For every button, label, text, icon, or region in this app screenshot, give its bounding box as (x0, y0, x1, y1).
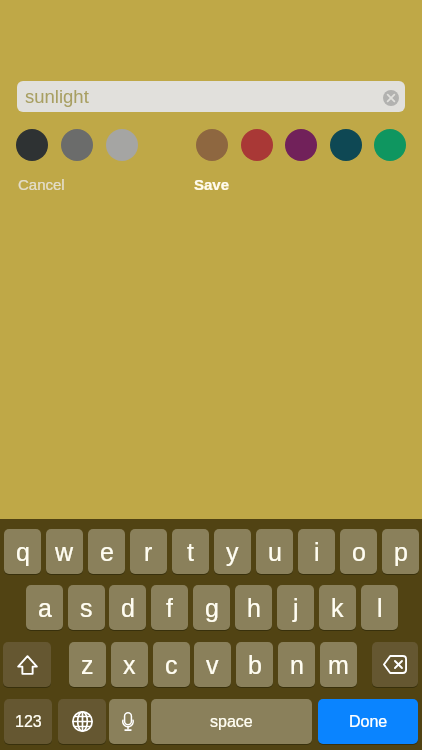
button[interactable]: y (214, 529, 251, 574)
button[interactable]: Colour swatch (285, 129, 317, 161)
staticText: v (206, 651, 219, 679)
button[interactable]: a (26, 585, 63, 630)
button[interactable]: n (278, 642, 315, 687)
staticText: Cancel (18, 176, 65, 193)
button[interactable]: Colour swatch (61, 129, 93, 161)
button[interactable]: r (130, 529, 167, 574)
staticText: x (123, 651, 136, 679)
staticText: h (247, 594, 261, 622)
staticText: t (187, 538, 194, 566)
button[interactable]: Save (194, 176, 230, 193)
button[interactable]: x (111, 642, 148, 687)
button[interactable]: Next keyboard (58, 699, 106, 744)
staticText: s (80, 594, 93, 622)
staticText: m (328, 651, 349, 679)
staticText: k (331, 594, 344, 622)
button[interactable]: Dictation (109, 699, 147, 744)
button[interactable]: Done (318, 699, 418, 744)
staticText: z (81, 651, 94, 679)
staticText: r (144, 538, 153, 566)
staticText: 123 (15, 713, 42, 731)
button[interactable]: b (236, 642, 273, 687)
button[interactable]: Colour swatch (374, 129, 406, 161)
staticText: w (55, 538, 74, 566)
button[interactable]: v (194, 642, 231, 687)
button[interactable]: space (151, 699, 312, 744)
staticText: g (205, 594, 219, 622)
button[interactable]: m (320, 642, 357, 687)
button[interactable]: d (109, 585, 146, 630)
staticText: sunlight (25, 86, 89, 107)
button[interactable]: Cancel (18, 176, 65, 193)
button[interactable]: g (193, 585, 230, 630)
button[interactable]: Colour swatch (196, 129, 228, 161)
staticText: c (165, 651, 178, 679)
staticText: i (314, 538, 320, 566)
button[interactable]: Colour swatch (330, 129, 362, 161)
button[interactable]: i (298, 529, 335, 574)
button[interactable]: s (68, 585, 105, 630)
staticText: q (16, 538, 30, 566)
button[interactable]: o (340, 529, 377, 574)
staticText: y (226, 538, 239, 566)
button[interactable]: u (256, 529, 293, 574)
button[interactable]: Shift (3, 642, 51, 687)
staticText: f (166, 594, 173, 622)
button[interactable]: h (235, 585, 272, 630)
staticText: Save (194, 176, 230, 193)
staticText: p (394, 538, 408, 566)
button[interactable]: q (4, 529, 41, 574)
button[interactable]: sunlight (17, 81, 405, 112)
button[interactable]: t (172, 529, 209, 574)
staticText: j (293, 594, 299, 622)
button[interactable]: c (153, 642, 190, 687)
button[interactable]: Colour swatch (16, 129, 48, 161)
button[interactable]: z (69, 642, 106, 687)
staticText: u (268, 538, 282, 566)
button[interactable]: j (277, 585, 314, 630)
staticText: a (38, 594, 52, 622)
button[interactable]: f (151, 585, 188, 630)
button[interactable]: e (88, 529, 125, 574)
button[interactable]: Colour swatch (106, 129, 138, 161)
button[interactable]: Backspace (372, 642, 418, 687)
staticText: space (210, 713, 253, 731)
staticText: b (248, 651, 262, 679)
button[interactable]: Numbers (4, 699, 52, 744)
staticText: o (352, 538, 366, 566)
staticText: d (121, 594, 135, 622)
staticText: e (100, 538, 114, 566)
button[interactable]: w (46, 529, 83, 574)
button[interactable]: p (382, 529, 419, 574)
button[interactable]: Clear text (383, 90, 399, 106)
staticText: n (290, 651, 304, 679)
staticText: Done (349, 713, 388, 731)
button[interactable]: Colour swatch (241, 129, 273, 161)
button[interactable]: k (319, 585, 356, 630)
staticText: l (377, 594, 383, 622)
button[interactable]: l (361, 585, 398, 630)
